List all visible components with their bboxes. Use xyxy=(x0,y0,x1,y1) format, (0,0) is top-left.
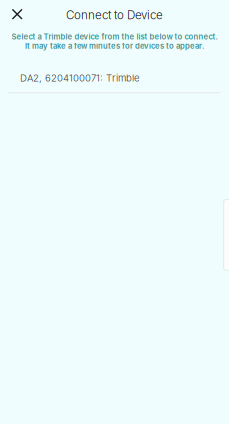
staticText: Select a Trimble device from the list be… xyxy=(11,32,217,41)
staticText: It may take a few minutes for devices to… xyxy=(25,41,204,51)
button[interactable]: DA2, 6204100071: Trimble xyxy=(0,64,229,92)
staticText: Connect to Device xyxy=(66,8,163,22)
staticText: DA2, 6204100071: Trimble xyxy=(20,72,140,84)
button[interactable]: Close xyxy=(4,2,30,26)
